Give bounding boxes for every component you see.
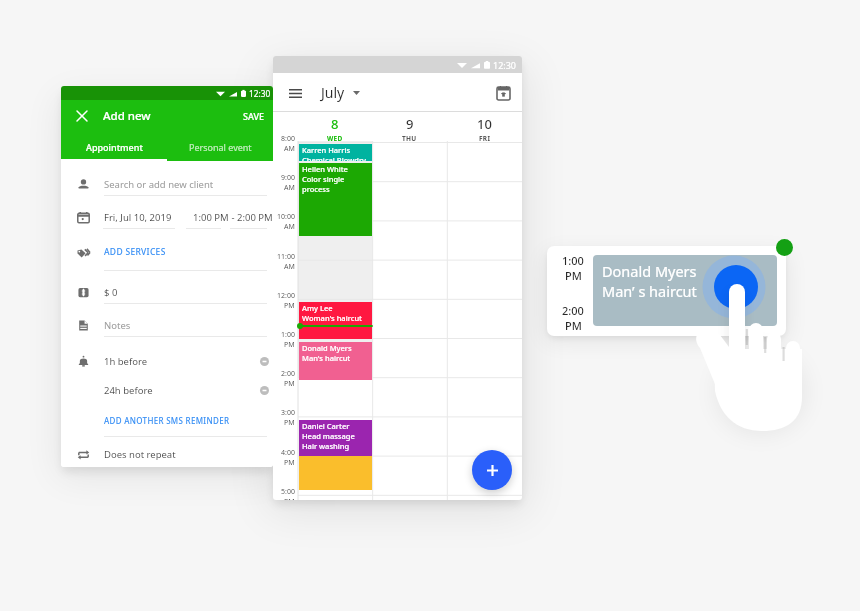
staticText: 1h before	[104, 355, 148, 368]
staticText: 11:00	[277, 252, 295, 262]
button[interactable]: 1h before	[61, 348, 273, 374]
button[interactable]: Add appointment	[472, 450, 512, 490]
button[interactable]: July	[317, 79, 364, 106]
button[interactable]: Hellen White	[299, 163, 372, 236]
staticText: 2:00	[562, 303, 584, 318]
staticText: 2:00	[281, 369, 295, 379]
button[interactable]: 24h before	[61, 377, 273, 403]
staticText: 1:00	[562, 253, 584, 268]
staticText: PM	[284, 458, 295, 468]
button[interactable]: Amy Lee	[299, 302, 372, 339]
staticText: Donald Myers	[302, 343, 352, 353]
staticText: Amy Lee	[302, 303, 333, 313]
staticText: Notes	[104, 319, 131, 332]
staticText: Donald Myers	[602, 261, 697, 281]
staticText: 3:00	[281, 408, 295, 418]
staticText: Appointment	[86, 141, 143, 153]
staticText: Chemical Blowdry	[302, 155, 367, 161]
button[interactable]: Notes	[61, 312, 273, 338]
staticText: PM	[565, 318, 582, 333]
button[interactable]: Daniel Carter	[299, 420, 372, 456]
button[interactable]: $ 0	[61, 279, 273, 305]
staticText: Man’ s haircut	[602, 281, 697, 301]
staticText: 10	[477, 115, 492, 133]
staticText: Color single	[302, 174, 345, 184]
staticText: Hellen White	[302, 164, 348, 174]
staticText: 5:00	[281, 487, 295, 497]
button[interactable]: Calendar	[488, 78, 518, 108]
staticText: Karren Harris	[302, 145, 351, 155]
staticText: Does not repeat	[104, 448, 176, 461]
staticText: -	[229, 211, 237, 224]
staticText: AM	[284, 144, 295, 154]
staticText: AM	[284, 222, 295, 232]
staticText: 4:00	[281, 448, 295, 458]
button[interactable]: Does not repeat	[61, 441, 273, 467]
button[interactable]: 8	[298, 112, 372, 141]
staticText: PM	[284, 379, 295, 389]
staticText: 9:00	[281, 173, 295, 183]
button[interactable]: Fri, Jul 10, 2019	[61, 204, 273, 230]
staticText: 9	[406, 115, 414, 133]
staticText: AM	[284, 262, 295, 272]
button[interactable]: SAVE	[235, 104, 273, 128]
button[interactable]: Personal event	[167, 132, 273, 161]
staticText: PM	[284, 418, 295, 428]
staticText: THU	[402, 134, 417, 141]
button[interactable]: 9	[372, 112, 447, 141]
staticText: WED	[327, 134, 343, 141]
staticText: Hair washing	[302, 441, 350, 451]
button[interactable]: ADD ANOTHER SMS REMINDER	[61, 407, 273, 433]
staticText: ADD ANOTHER SMS REMINDER	[104, 415, 230, 426]
staticText: $ 0	[104, 286, 118, 299]
staticText: Woman's haircut	[302, 313, 362, 323]
button[interactable]: Close	[67, 101, 97, 131]
staticText: ADD SERVICES	[104, 246, 166, 258]
staticText: Personal event	[189, 141, 252, 153]
staticText: AM	[284, 183, 295, 193]
button[interactable]: ADD SERVICES	[61, 239, 273, 265]
staticText: Head massage	[302, 431, 355, 441]
button[interactable]: Karren Harris	[299, 144, 372, 161]
staticText: FRI	[479, 134, 491, 141]
staticText: 2:00 PM	[237, 211, 273, 224]
staticText: July	[321, 83, 345, 102]
staticText: Man's haircut	[302, 353, 351, 363]
staticText: PM	[284, 301, 295, 311]
staticText: 1:00	[281, 330, 295, 340]
staticText: PM	[284, 497, 295, 500]
staticText: 12:00	[277, 291, 295, 301]
staticText: Add new	[103, 108, 151, 124]
staticText: SAVE	[243, 110, 265, 122]
button[interactable]: Search or add new client	[61, 171, 273, 197]
button[interactable]: Appointment	[61, 132, 167, 161]
staticText: Fri, Jul 10, 2019	[104, 211, 172, 224]
staticText: 1:00 PM	[193, 211, 229, 224]
staticText: PM	[284, 340, 295, 350]
staticText: 10:00	[277, 212, 295, 222]
staticText: Daniel Carter	[302, 421, 350, 431]
button[interactable]: Menu	[278, 76, 312, 110]
staticText: 8	[331, 115, 339, 133]
staticText: PM	[565, 268, 582, 283]
staticText: 24h before	[104, 384, 153, 397]
staticText: Search or add new client	[104, 178, 214, 191]
staticText: process	[302, 184, 330, 194]
staticText: 12:30	[493, 59, 517, 71]
staticText: 8:00	[281, 134, 295, 144]
button[interactable]: Donald Myers	[299, 342, 372, 380]
button[interactable]: Donald Myers	[593, 255, 777, 326]
staticText: 12:30	[249, 88, 271, 99]
button[interactable]: 10	[447, 112, 522, 141]
